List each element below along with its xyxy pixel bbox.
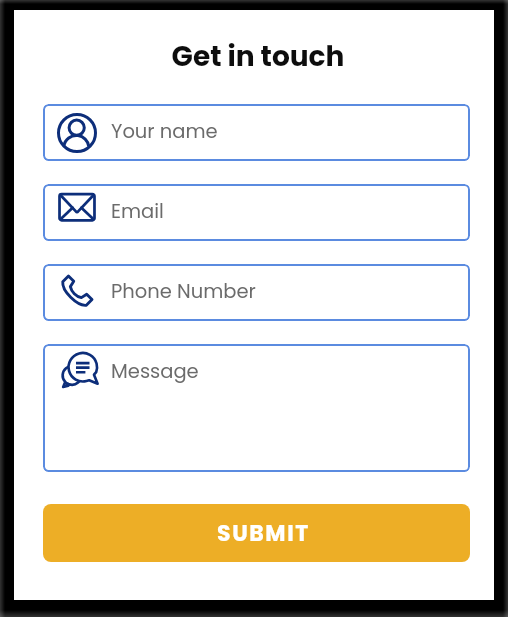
button[interactable]: SUBMIT <box>43 504 470 562</box>
staticText: Email <box>111 198 164 225</box>
button[interactable]: Email <box>43 184 470 241</box>
staticText: Get in touch <box>22 37 494 76</box>
staticText: Message <box>111 358 199 385</box>
button[interactable]: Phone Number <box>43 264 470 321</box>
button[interactable]: Your name <box>43 104 470 161</box>
staticText: SUBMIT <box>217 518 310 549</box>
button[interactable]: Message <box>43 344 470 472</box>
staticText: Phone Number <box>111 278 256 305</box>
staticText: Your name <box>111 118 218 145</box>
